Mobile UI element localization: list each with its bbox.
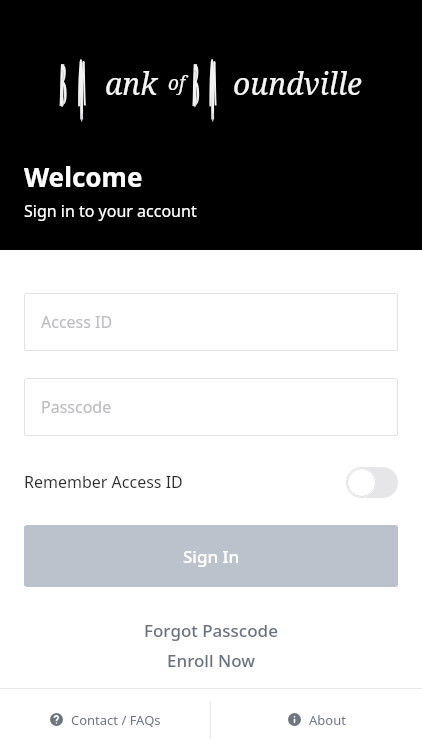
button[interactable]: Remember Access ID — [24, 460, 398, 504]
staticText: Enroll Now — [167, 649, 255, 672]
staticText: Contact / FAQs — [71, 711, 161, 729]
staticText: of — [168, 70, 185, 96]
button[interactable]: Enroll Now — [24, 645, 398, 675]
staticText: Sign in to your account — [24, 200, 197, 222]
staticText: Passcode — [41, 396, 112, 418]
staticText: oundville — [233, 63, 362, 104]
button[interactable]: Contact / FAQs — [0, 689, 210, 750]
staticText: Forgot Passcode — [144, 619, 278, 642]
button[interactable]: Passcode — [24, 378, 398, 436]
button[interactable]: About — [211, 689, 422, 750]
button[interactable]: Access ID — [24, 293, 398, 351]
staticText: Access ID — [41, 311, 113, 333]
staticText: Remember Access ID — [24, 471, 183, 493]
button[interactable]: Forgot Passcode — [24, 615, 398, 645]
staticText: Sign In — [183, 545, 240, 568]
staticText: About — [309, 711, 346, 729]
staticText: Welcome — [24, 159, 143, 194]
staticText: ank — [105, 63, 158, 104]
button[interactable]: Sign In — [24, 525, 398, 587]
